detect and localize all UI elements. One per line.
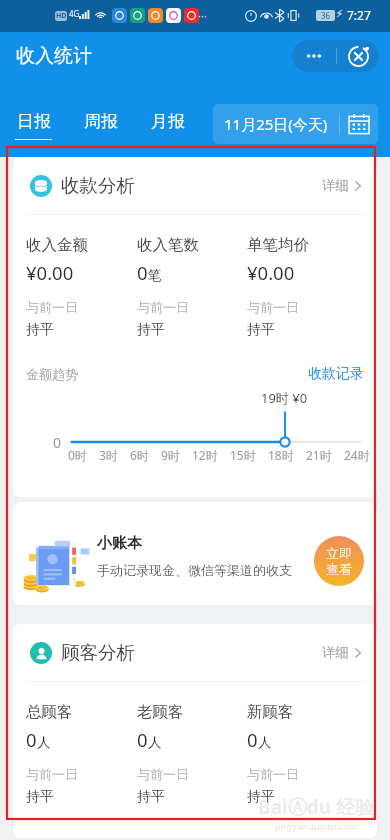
staticText: 与前一日: [26, 299, 78, 315]
staticText: 总顾客: [26, 702, 73, 722]
staticText: HD: [56, 11, 67, 21]
staticText: 日报: [17, 111, 51, 132]
staticText: 与前一日: [137, 299, 189, 315]
staticText: 11月25日(今天): [224, 114, 328, 134]
staticText: 与前一日: [247, 766, 299, 782]
staticText: 收入金额: [26, 235, 88, 255]
staticText: jingyan.baidu.com: [275, 820, 358, 832]
button[interactable]: More options: [292, 40, 336, 72]
staticText: 0: [137, 260, 148, 285]
staticText: 19时 ¥0: [261, 389, 308, 407]
staticText: 0: [137, 727, 148, 752]
staticText: 持平: [247, 321, 275, 339]
staticText: 手动记录现金、微信等渠道的收支: [97, 562, 292, 578]
staticText: 收款分析: [61, 174, 135, 197]
staticText: ¥0.00: [26, 260, 74, 285]
staticText: 0: [53, 433, 62, 452]
button[interactable]: Calendar: [340, 104, 378, 144]
staticText: 收入统计: [16, 44, 92, 68]
staticText: 金额趋势: [26, 366, 78, 382]
staticText: 24时: [344, 447, 370, 463]
staticText: 新顾客: [247, 702, 294, 722]
staticText: 持平: [137, 788, 165, 806]
staticText: 12时: [192, 447, 218, 463]
button[interactable]: 立即 查看: [314, 536, 364, 586]
staticText: 与前一日: [137, 766, 189, 782]
staticText: 0: [26, 727, 37, 752]
button[interactable]: 周报: [67, 80, 134, 140]
staticText: 与前一日: [26, 766, 78, 782]
staticText: 持平: [26, 321, 54, 339]
staticText: 周报: [84, 111, 118, 132]
staticText: 4G: [69, 8, 80, 19]
staticText: 3时: [99, 447, 118, 463]
staticText: 收入笔数: [137, 235, 199, 255]
staticText: 0时: [68, 447, 87, 463]
staticText: 详细: [322, 644, 349, 661]
staticText: 单笔均价: [247, 235, 309, 255]
staticText: 18时: [268, 447, 294, 463]
staticText: 小账本: [97, 534, 142, 553]
staticText: ¥0.00: [247, 260, 295, 285]
staticText: 21时: [306, 447, 332, 463]
button[interactable]: 顾客分析: [13, 624, 377, 681]
staticText: 与前一日: [247, 299, 299, 315]
staticText: 老顾客: [137, 702, 184, 722]
staticText: 顾客分析: [61, 641, 135, 664]
staticText: 15时: [230, 447, 256, 463]
staticText: 笔: [148, 267, 162, 284]
button[interactable]: Close: [337, 40, 379, 72]
button[interactable]: 月报: [134, 80, 201, 140]
button[interactable]: 收款分析: [13, 157, 377, 214]
staticText: 9时: [161, 447, 180, 463]
button[interactable]: 小账本: [13, 502, 377, 605]
staticText: ···: [198, 8, 207, 23]
staticText: 持平: [247, 788, 275, 806]
button[interactable]: 11月25日(今天): [213, 104, 378, 144]
staticText: 36: [321, 10, 331, 21]
staticText: 详细: [322, 177, 349, 194]
staticText: 月报: [151, 111, 185, 132]
staticText: 人: [37, 734, 51, 751]
staticText: ⚡: [336, 8, 344, 20]
button[interactable]: 日报: [0, 80, 67, 140]
staticText: 持平: [137, 321, 165, 339]
button[interactable]: 收款记录: [308, 365, 364, 383]
staticText: 人: [258, 734, 272, 751]
staticText: 立即 查看: [326, 545, 352, 578]
staticText: 6时: [130, 447, 149, 463]
staticText: BaiⒶdu 经验: [258, 794, 374, 820]
staticText: 0: [247, 727, 258, 752]
staticText: 持平: [26, 788, 54, 806]
staticText: 7:27: [347, 7, 371, 23]
staticText: 人: [148, 734, 162, 751]
